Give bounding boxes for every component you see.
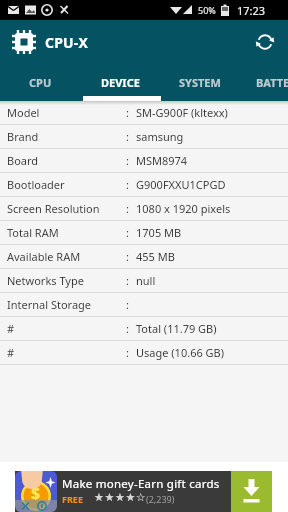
staticText: Total RAM	[7, 225, 59, 240]
button[interactable]: #	[0, 341, 288, 364]
staticText: SM-G900F (kltexx)	[136, 105, 228, 120]
button[interactable]: Available RAM	[0, 245, 288, 268]
staticText: Networks Type	[7, 273, 84, 288]
button[interactable]: Screen Resolution	[0, 197, 288, 220]
staticText: :	[126, 273, 129, 288]
staticText: Bootloader	[7, 177, 65, 192]
button[interactable]: Model	[0, 101, 288, 124]
staticText: Total (11.79 GB)	[136, 321, 217, 336]
staticText: 1705 MB	[136, 225, 182, 240]
staticText: 1080 x 1920 pixels	[136, 201, 231, 216]
staticText: :	[126, 153, 129, 168]
staticText: Model	[7, 105, 40, 120]
staticText: DEVICE	[101, 75, 140, 90]
staticText: :	[126, 297, 129, 312]
staticText: :	[126, 201, 129, 216]
staticText: BATTERY	[256, 75, 288, 90]
staticText: :	[126, 225, 129, 240]
staticText: Brand	[7, 129, 39, 144]
staticText: Board	[7, 153, 39, 168]
staticText: #	[7, 321, 15, 336]
staticText: CPU-X	[45, 33, 89, 52]
staticText: Screen Resolution	[7, 201, 100, 216]
button[interactable]: $	[15, 471, 272, 512]
staticText: (2,239)	[146, 493, 175, 505]
staticText: 50%	[198, 4, 216, 16]
staticText: :	[126, 321, 129, 336]
button[interactable]: BATTERY	[240, 64, 288, 101]
button[interactable]	[231, 471, 272, 512]
staticText: Internal Storage	[7, 297, 92, 312]
staticText: Make money-Earn gift cards	[62, 476, 220, 492]
button[interactable]: #	[0, 317, 288, 340]
staticText: G900FXXU1CPGD	[136, 177, 226, 192]
staticText: CPU	[29, 75, 52, 90]
staticText: 17:23	[237, 3, 266, 18]
staticText: #	[7, 345, 15, 360]
button[interactable]: CPU	[0, 64, 80, 101]
staticText: :	[126, 129, 129, 144]
staticText: Usage (10.66 GB)	[136, 345, 225, 360]
staticText: $	[31, 482, 41, 504]
staticText: :	[126, 105, 129, 120]
button[interactable]: DEVICE	[80, 64, 160, 101]
staticText: :	[126, 249, 129, 264]
button[interactable]: Networks Type	[0, 269, 288, 292]
staticText: 455 MB	[136, 249, 175, 264]
button[interactable]: SYSTEM	[160, 64, 240, 101]
staticText: FREE	[62, 493, 83, 505]
button[interactable]: Total RAM	[0, 221, 288, 244]
staticText: ★★★★☆	[94, 491, 147, 504]
button[interactable]: Board	[0, 149, 288, 172]
staticText: MSM8974	[136, 153, 188, 168]
button[interactable]	[253, 30, 277, 54]
button[interactable]: Internal Storage	[0, 293, 288, 316]
staticText: Available RAM	[7, 249, 81, 264]
button[interactable]: Bootloader	[0, 173, 288, 196]
staticText: SYSTEM	[179, 75, 221, 90]
button[interactable]: Brand	[0, 125, 288, 148]
staticText: null	[136, 273, 156, 288]
staticText: samsung	[136, 129, 184, 144]
staticText: :	[126, 177, 129, 192]
staticText: :	[126, 345, 129, 360]
